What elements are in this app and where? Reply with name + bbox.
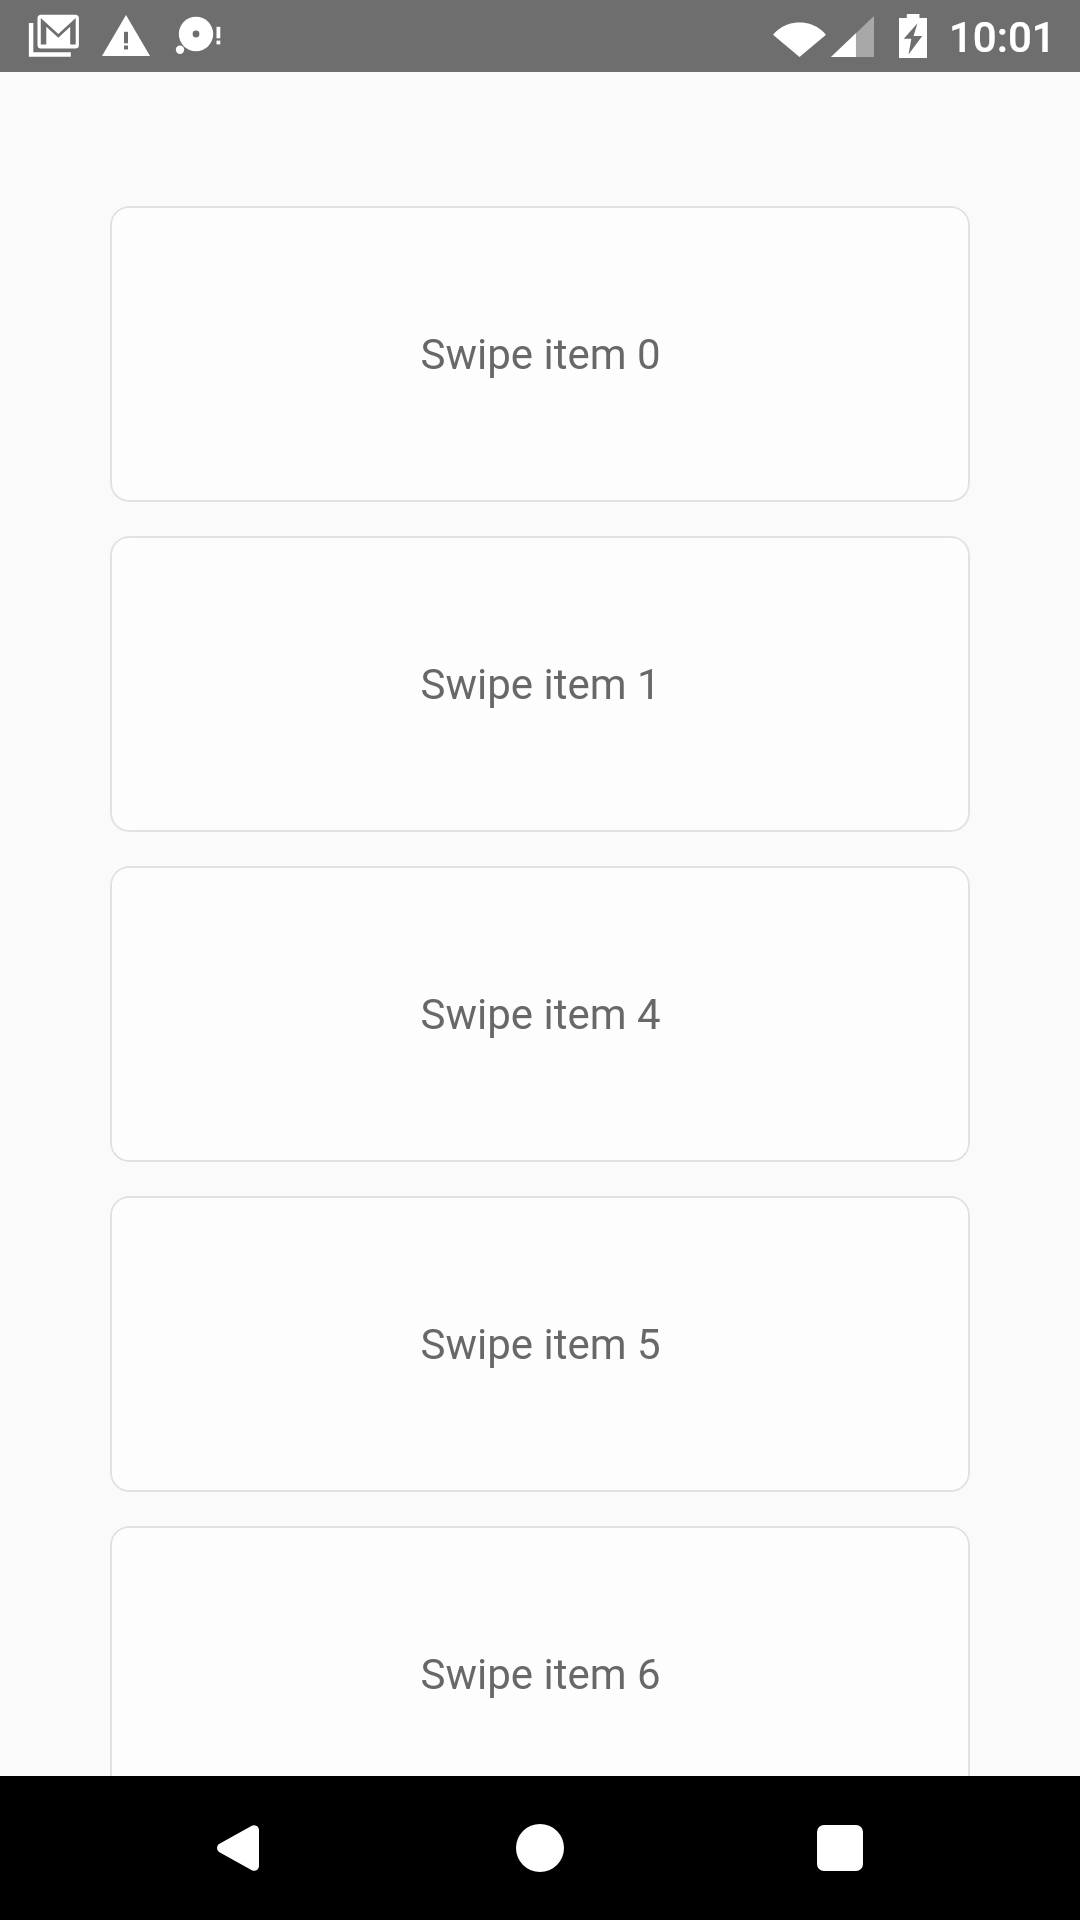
- button[interactable]: Swipe item 6: [110, 1526, 970, 1822]
- other: Status bar: [0, 0, 1080, 72]
- button[interactable]: Swipe item 0: [110, 206, 970, 502]
- button[interactable]: Swipe item 4: [110, 866, 970, 1162]
- staticText: Swipe item 1: [420, 660, 661, 709]
- button[interactable]: Swipe item 1: [110, 536, 970, 832]
- staticText: 10:01: [949, 13, 1056, 62]
- staticText: Swipe item 5: [420, 1320, 661, 1369]
- staticText: Swipe item 6: [420, 1650, 661, 1699]
- button[interactable]: Swipe item 5: [110, 1196, 970, 1492]
- staticText: Swipe item 4: [420, 990, 661, 1039]
- button[interactable]: Home: [468, 1776, 612, 1920]
- staticText: Swipe item 0: [420, 330, 661, 379]
- button[interactable]: Back: [166, 1776, 310, 1920]
- button[interactable]: Recent apps: [768, 1776, 912, 1920]
